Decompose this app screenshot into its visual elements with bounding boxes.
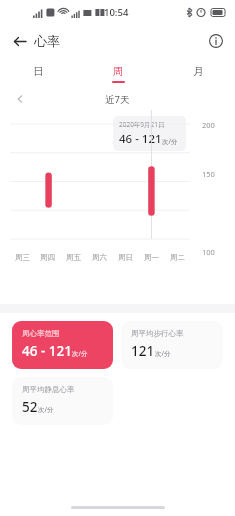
button[interactable]: 周平均静息心率 [12, 377, 113, 425]
staticText: 46 - 121 [22, 342, 72, 360]
staticText: 周平均静息心率 [22, 385, 75, 394]
staticText: 次/分 [162, 137, 178, 146]
staticText: 月 [193, 65, 204, 78]
button[interactable]: Previous week [10, 89, 30, 109]
staticText: 周平均步行心率 [131, 329, 184, 338]
staticText: 周二 [170, 253, 185, 262]
staticText: 周四 [40, 253, 55, 262]
button[interactable]: 周平均步行心率 [121, 321, 223, 369]
button[interactable]: 周心率范围 [12, 321, 113, 369]
button[interactable]: 周 [101, 65, 135, 83]
staticText: 10:54 [104, 6, 129, 19]
staticText: 周六 [92, 253, 107, 262]
staticText: 次/分 [38, 405, 54, 414]
staticText: 100 [202, 247, 215, 257]
button[interactable]: 月 [181, 65, 215, 83]
staticText: 周日 [118, 253, 133, 262]
staticText: 近7天 [105, 93, 130, 106]
staticText: 次/分 [155, 349, 171, 358]
staticText: 200 [202, 120, 215, 130]
staticText: 150 [202, 169, 215, 179]
staticText: 周心率范围 [22, 329, 60, 338]
staticText: 心率 [34, 33, 60, 49]
staticText: 周 [113, 65, 124, 78]
staticText: 121 [131, 342, 155, 360]
button[interactable]: 日 [21, 65, 55, 83]
button[interactable]: Information [204, 29, 228, 53]
staticText: 周三 [15, 253, 30, 262]
staticText: 2020年9月21日 [119, 120, 165, 129]
staticText: 周一 [144, 253, 159, 262]
staticText: 日 [33, 65, 44, 78]
staticText: 46 - 121 [119, 131, 162, 147]
staticText: 52 [22, 398, 38, 416]
staticText: 周五 [66, 253, 81, 262]
staticText: 次/分 [72, 349, 88, 358]
button[interactable]: Back [6, 28, 32, 54]
